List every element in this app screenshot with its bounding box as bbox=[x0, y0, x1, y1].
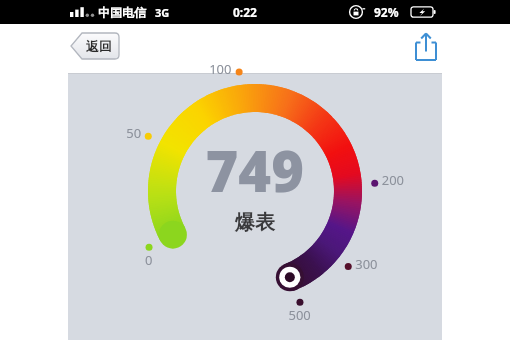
button[interactable] bbox=[70, 32, 120, 60]
button[interactable]: Share bbox=[411, 31, 441, 63]
